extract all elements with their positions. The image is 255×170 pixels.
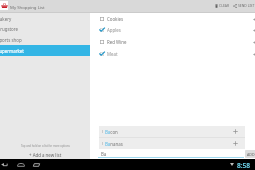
staticText: Sports shop [0, 37, 22, 43]
button[interactable]: Red Wine [90, 36, 255, 48]
button[interactable]: ADD [245, 150, 255, 158]
staticText: Bacon [105, 129, 118, 135]
button[interactable]: CLEAR [215, 3, 230, 8]
staticText: ADD [247, 152, 255, 157]
button[interactable]: Drugstore [0, 23, 90, 34]
button[interactable]: + Add a new list [0, 150, 90, 160]
staticText: + Add a new list [29, 152, 62, 158]
staticText: Apples [107, 27, 121, 33]
staticText: Bakery [0, 16, 12, 22]
staticText: Cookies [107, 16, 124, 22]
staticText: Supermarket [0, 48, 24, 54]
button[interactable]: Sports shop [0, 34, 90, 45]
staticText: Meat [107, 51, 118, 57]
button[interactable]: Recent apps [33, 162, 40, 167]
button[interactable]: Cookies [90, 13, 255, 25]
button[interactable]: Apples [90, 24, 255, 36]
staticText: SEND LIST [238, 3, 255, 8]
staticText: Drugstore [0, 26, 18, 32]
button[interactable]: Meat [90, 48, 255, 60]
button[interactable]: SEND LIST [233, 3, 255, 8]
button[interactable]: Supermarket [0, 45, 90, 56]
button[interactable]: Bacon [99, 126, 245, 137]
button[interactable]: Back [1, 162, 8, 167]
staticText: My Shopping List [10, 4, 45, 10]
staticText: Ba [101, 151, 107, 157]
button[interactable]: Bananas [99, 138, 245, 149]
staticText: Tap and hold on a list for more options [21, 144, 70, 148]
staticText: Bananas [105, 141, 123, 147]
staticText: CLEAR [219, 3, 230, 8]
button[interactable]: Bakery [0, 13, 90, 24]
staticText: Red Wine [107, 39, 127, 45]
staticText: 8:58 [237, 161, 251, 170]
button[interactable]: Home [17, 162, 25, 167]
